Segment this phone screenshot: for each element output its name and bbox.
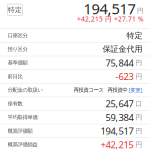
staticText: [変更] (127, 86, 142, 94)
staticText: 75,844 (105, 57, 133, 69)
button[interactable]: 基準価額 (0, 56, 150, 69)
staticText: 基準価額 (7, 59, 27, 66)
button[interactable]: 概算評価額 (0, 124, 150, 137)
staticText: 保証金代用 (102, 44, 142, 54)
staticText: 概算評価額 (7, 128, 32, 134)
button[interactable]: 概算評価損益 (0, 138, 150, 150)
staticText: +42,215 (100, 138, 133, 150)
staticText: 円 (133, 72, 142, 80)
staticText: 分配金の取扱い (7, 87, 42, 93)
button[interactable]: 分配金の取扱い (0, 83, 150, 97)
staticText: 概算評価損益 (7, 141, 37, 148)
staticText: 再投資コース (73, 87, 103, 93)
staticText: 円 (133, 113, 142, 121)
staticText: 円 (133, 127, 142, 135)
staticText: 円 (133, 59, 142, 67)
staticText: -623 (115, 70, 133, 83)
staticText: +42,215 円 (77, 15, 112, 23)
staticText: 再投資中 (103, 87, 127, 93)
button[interactable]: 保有数 (0, 97, 150, 110)
staticText: 円 (133, 140, 142, 149)
staticText: 25,647 (105, 97, 133, 110)
staticText: 預り区分 (7, 46, 27, 52)
staticText: 59,384 (105, 111, 133, 123)
staticText: 口座区分 (7, 32, 27, 39)
staticText: 前日比 (7, 73, 22, 80)
staticText: 特定 (8, 6, 22, 14)
staticText: 特定 (126, 31, 142, 40)
button[interactable]: 前日比 (0, 70, 150, 83)
staticText: +27.71 % (114, 15, 144, 23)
button[interactable]: 預り区分 (0, 43, 150, 56)
button[interactable]: 平均取得単価 (0, 111, 150, 124)
button[interactable]: 口座区分 (0, 29, 150, 42)
staticText: 保有数 (7, 100, 22, 107)
staticText: 194,517 (100, 125, 133, 137)
staticText: 194,517 (83, 0, 135, 18)
staticText: 口 (133, 100, 142, 108)
staticText: 平均取得単価 (7, 114, 37, 121)
staticText: 円 (137, 7, 144, 15)
